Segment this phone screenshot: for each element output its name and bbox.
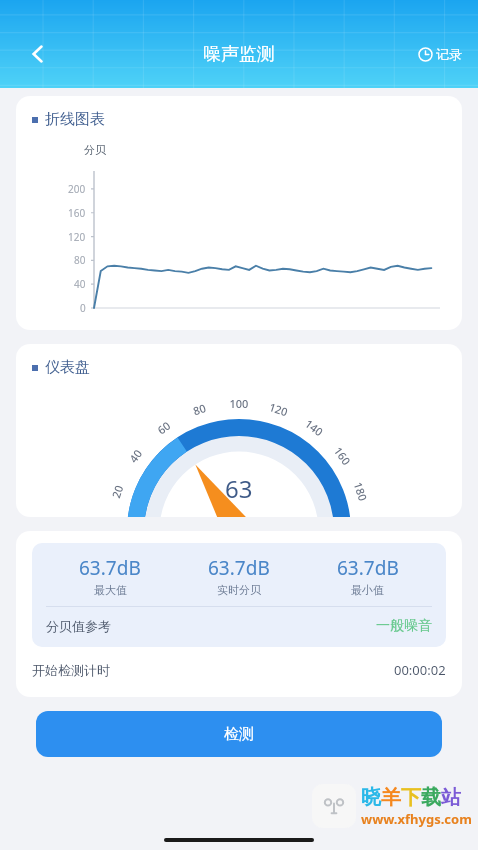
staticText: 羊 [381,785,401,810]
staticText: 实时分贝 [217,583,261,597]
button[interactable]: 记录 [416,40,464,68]
staticText: 最大值 [94,583,127,597]
staticText: 最小值 [351,583,384,597]
staticText: 检测 [224,725,254,744]
staticText: 分贝值参考 [46,618,111,634]
staticText: 站 [441,785,461,810]
button[interactable]: Back [18,34,58,74]
staticText: 一般噪音 [376,617,432,635]
staticText: 晓 [361,785,381,810]
staticText: 63.7dB [208,555,270,581]
staticText: 00:00:02 [394,661,446,679]
staticText: 63.7dB [337,555,399,581]
staticText: 63.7dB [79,555,141,581]
staticText: 开始检测计时 [32,662,110,678]
staticText: 载 [421,785,441,810]
staticText: 仪表盘 [45,358,90,377]
button[interactable]: 检测 [36,711,442,757]
button[interactable]: 仪表盘 [16,344,462,517]
staticText: 记录 [436,46,462,62]
staticText: 折线图表 [45,110,105,129]
staticText: 下 [401,785,421,810]
button[interactable]: 63.7dB [16,531,462,697]
button[interactable]: 折线图表 [16,96,462,330]
staticText: www.xfhygs.com [361,810,472,828]
staticText: 噪声监测 [203,43,275,66]
